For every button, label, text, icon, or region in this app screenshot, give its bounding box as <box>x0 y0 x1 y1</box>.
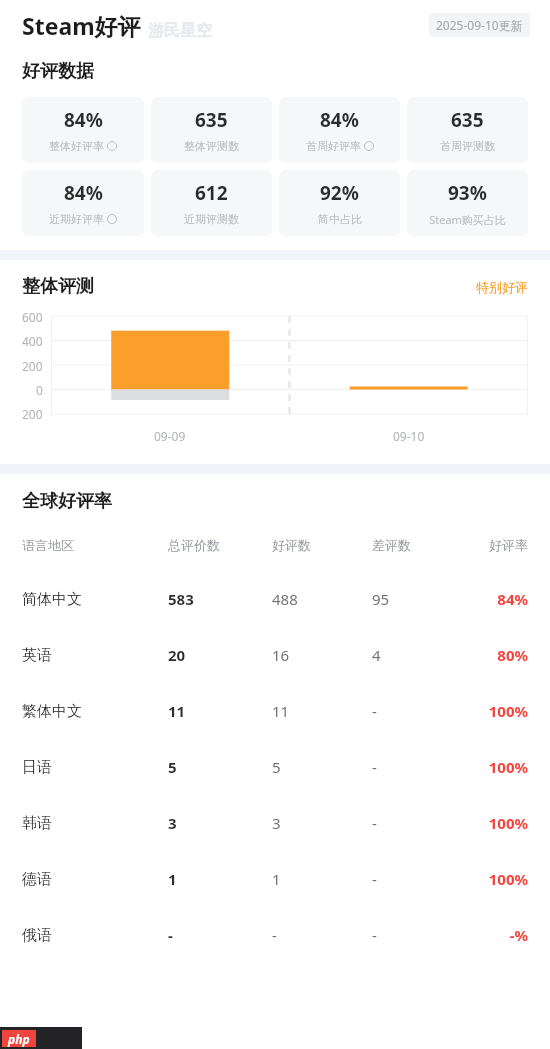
staticText: 全球好评率 <box>22 490 112 513</box>
staticText: 93% <box>448 180 487 206</box>
staticText: - <box>372 925 377 945</box>
staticText: 繁体中文 <box>22 702 82 721</box>
button[interactable]: 635 <box>151 97 272 163</box>
staticText: 1 <box>272 869 281 889</box>
staticText: php <box>8 1031 30 1047</box>
staticText: 5 <box>272 757 281 777</box>
staticText: 20 <box>168 645 186 665</box>
staticText: 整体评测数 <box>184 139 239 153</box>
staticText: 100% <box>488 757 528 777</box>
staticText: - <box>372 869 377 889</box>
staticText: 特别好评 <box>476 279 528 295</box>
staticText: 600 <box>22 309 43 325</box>
staticText: 游民星空 <box>148 21 212 41</box>
staticText: 100% <box>488 813 528 833</box>
staticText: 200 <box>22 358 43 374</box>
staticText: 09-09 <box>154 428 186 444</box>
staticText: 总评价数 <box>168 537 220 553</box>
button[interactable]: 84% <box>22 97 144 163</box>
staticText: 近期好评率 <box>49 212 104 226</box>
staticText: 简体中文 <box>22 590 82 609</box>
staticText: Steam购买占比 <box>429 212 506 227</box>
button[interactable]: 俄语 <box>22 925 528 945</box>
staticText: 84% <box>64 180 103 206</box>
button[interactable]: 84% <box>22 170 144 236</box>
button[interactable]: 日语 <box>22 757 528 777</box>
staticText: 德语 <box>22 870 52 889</box>
staticText: 0 <box>36 382 43 398</box>
staticText: 好评数据 <box>22 60 94 83</box>
staticText: -% <box>509 925 528 945</box>
staticText: 3 <box>168 813 177 833</box>
staticText: 简中占比 <box>318 212 362 226</box>
button[interactable]: 德语 <box>22 869 528 889</box>
button[interactable]: 84% <box>279 97 400 163</box>
staticText: 16 <box>272 645 290 665</box>
staticText: 好评数 <box>272 537 311 553</box>
staticText: 语言地区 <box>22 537 74 553</box>
staticText: 92% <box>320 180 359 206</box>
button[interactable]: 语言地区 <box>22 537 528 553</box>
staticText: 4 <box>372 645 381 665</box>
staticText: 612 <box>195 180 228 206</box>
staticText: 95 <box>372 589 390 609</box>
staticText: 日语 <box>22 758 52 777</box>
staticText: 84% <box>64 107 103 133</box>
button[interactable]: 93% <box>407 170 528 236</box>
staticText: 俄语 <box>22 926 52 945</box>
button[interactable]: 635 <box>407 97 528 163</box>
staticText: 整体评测 <box>22 275 94 298</box>
button[interactable]: 92% <box>279 170 400 236</box>
staticText: - <box>372 757 377 777</box>
staticText: - <box>372 813 377 833</box>
staticText: 635 <box>451 107 484 133</box>
staticText: 首周好评率 <box>306 139 361 153</box>
staticText: - <box>272 925 277 945</box>
staticText: 2025-09-10更新 <box>436 17 523 33</box>
staticText: 635 <box>195 107 228 133</box>
staticText: 09-10 <box>393 428 425 444</box>
staticText: 583 <box>168 589 194 609</box>
staticText: 200 <box>22 406 43 422</box>
button[interactable]: 英语 <box>22 645 528 665</box>
staticText: 1 <box>168 869 177 889</box>
staticText: - <box>372 701 377 721</box>
staticText: 100% <box>488 701 528 721</box>
staticText: 整体好评率 <box>49 139 104 153</box>
staticText: 好评率 <box>489 537 528 553</box>
staticText: 韩语 <box>22 814 52 833</box>
staticText: 首周评测数 <box>440 139 495 153</box>
button[interactable]: 2025-09-10更新 <box>429 13 530 37</box>
button[interactable]: 简体中文 <box>22 589 528 609</box>
button[interactable]: 特别好评 <box>476 279 528 295</box>
staticText: 84% <box>497 589 528 609</box>
staticText: 488 <box>272 589 298 609</box>
staticText: Steam好评 <box>22 10 141 41</box>
button[interactable]: 612 <box>151 170 272 236</box>
staticText: 100% <box>488 869 528 889</box>
staticText: 11 <box>272 701 290 721</box>
button[interactable]: 繁体中文 <box>22 701 528 721</box>
staticText: 80% <box>497 645 528 665</box>
staticText: 400 <box>22 333 43 349</box>
staticText: 英语 <box>22 646 52 665</box>
staticText: - <box>168 925 173 945</box>
staticText: 3 <box>272 813 281 833</box>
staticText: 11 <box>168 701 186 721</box>
button[interactable]: 韩语 <box>22 813 528 833</box>
staticText: 近期评测数 <box>184 212 239 226</box>
staticText: 差评数 <box>372 537 411 553</box>
staticText: 84% <box>320 107 359 133</box>
staticText: 5 <box>168 757 177 777</box>
other: php logo watermark <box>0 1027 82 1049</box>
